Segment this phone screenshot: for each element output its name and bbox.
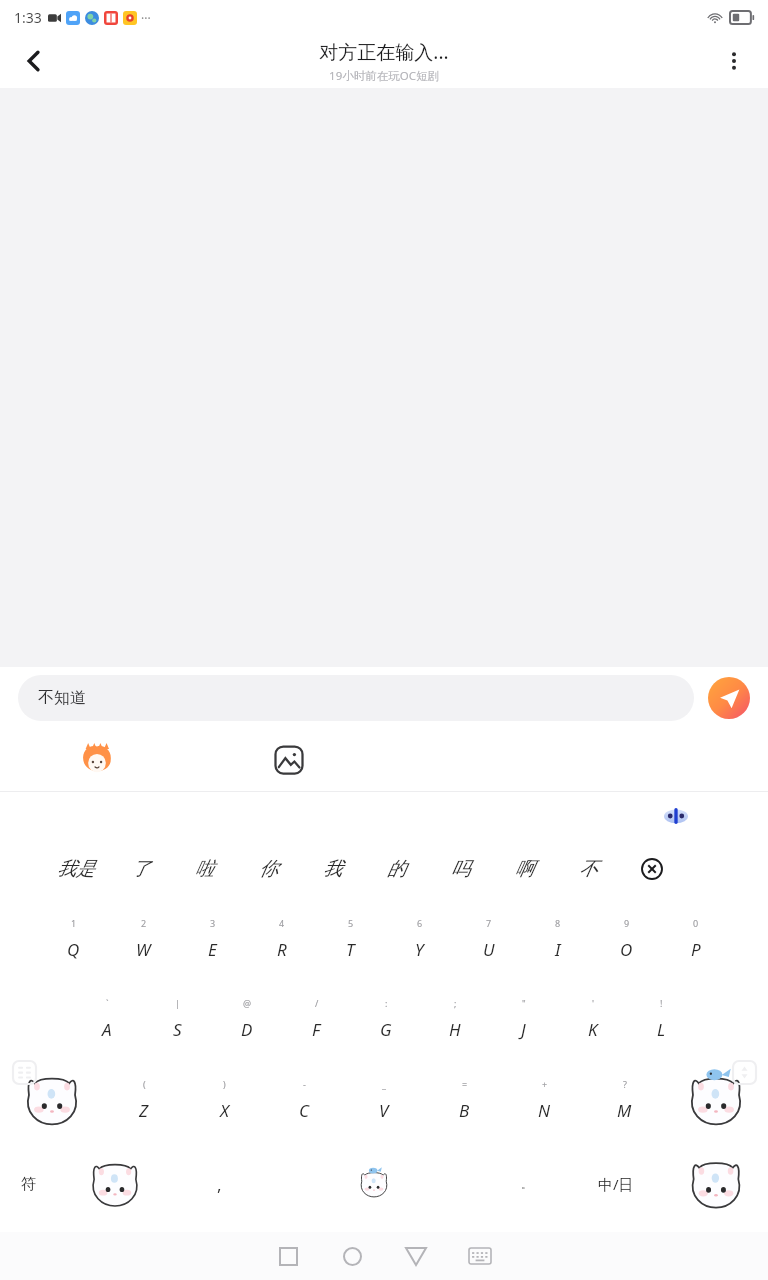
button[interactable]: 2	[108, 898, 178, 980]
button[interactable]: 啊	[492, 840, 556, 898]
staticText: A	[102, 1018, 112, 1041]
button[interactable]: '	[558, 980, 627, 1058]
staticText: 2	[141, 917, 147, 929]
button[interactable]: ;	[420, 980, 489, 1058]
staticText: '	[592, 997, 595, 1009]
button[interactable]: 不知道	[18, 675, 694, 721]
button[interactable]: Keyboard layout	[8, 1056, 40, 1088]
button[interactable]: 5	[316, 898, 385, 980]
button[interactable]: Home	[320, 1232, 384, 1280]
staticText: /	[315, 997, 319, 1009]
staticText: +	[542, 1078, 548, 1090]
button[interactable]: 吗	[428, 840, 492, 898]
button[interactable]: 的	[364, 840, 428, 898]
button[interactable]: Back	[384, 1232, 448, 1280]
staticText: 8	[555, 917, 561, 929]
button[interactable]: 中/日	[568, 1142, 664, 1226]
staticText: 中/日	[598, 1174, 634, 1194]
staticText: 啦	[195, 857, 214, 881]
button[interactable]: Voice input	[658, 798, 694, 834]
button[interactable]: 你	[236, 840, 300, 898]
staticText: U	[483, 938, 495, 961]
button[interactable]: !	[627, 980, 696, 1058]
button[interactable]: Stickers	[72, 735, 122, 785]
staticText: 5	[348, 917, 354, 929]
staticText: M	[617, 1099, 632, 1122]
button[interactable]: Close candidates	[620, 840, 684, 898]
button[interactable]: 3	[178, 898, 247, 980]
button[interactable]: `	[72, 980, 142, 1058]
staticText: W	[136, 938, 151, 961]
staticText: T	[346, 938, 355, 961]
button[interactable]: -	[264, 1058, 344, 1142]
staticText: 3	[210, 917, 216, 929]
staticText: Y	[415, 938, 424, 961]
button[interactable]: 4	[247, 898, 316, 980]
button[interactable]: Hide keyboard	[448, 1232, 512, 1280]
button[interactable]: 啦	[172, 840, 236, 898]
button[interactable]: /	[282, 980, 351, 1058]
staticText: ···	[141, 10, 151, 26]
button[interactable]: Shift	[0, 1058, 104, 1142]
button[interactable]: (	[104, 1058, 184, 1142]
button[interactable]: 我是	[44, 840, 108, 898]
button[interactable]: 6	[385, 898, 454, 980]
staticText: 9	[624, 917, 630, 929]
staticText: 6	[417, 917, 423, 929]
button[interactable]: 我	[300, 840, 364, 898]
button[interactable]: 符	[0, 1142, 56, 1226]
staticText: ?	[623, 1078, 627, 1090]
staticText: V	[379, 1099, 389, 1122]
staticText: 19小时前在玩OC短剧	[329, 68, 439, 84]
staticText: 。	[521, 1177, 532, 1191]
button[interactable]: 0	[661, 898, 730, 980]
button[interactable]: ?	[584, 1058, 664, 1142]
button[interactable]: _	[344, 1058, 424, 1142]
button[interactable]: :	[351, 980, 420, 1058]
staticText: "	[522, 997, 526, 1009]
button[interactable]: 1	[38, 898, 108, 980]
staticText: 对方正在输入...	[319, 39, 449, 65]
button[interactable]: Space	[264, 1142, 484, 1226]
staticText: Z	[139, 1099, 149, 1122]
button[interactable]: Send	[708, 677, 750, 719]
staticText: 不	[579, 857, 598, 881]
staticText: 不知道	[38, 688, 86, 708]
button[interactable]: "	[489, 980, 558, 1058]
staticText: C	[299, 1099, 309, 1122]
staticText: 你	[259, 857, 278, 881]
button[interactable]: )	[184, 1058, 264, 1142]
staticText: !	[660, 997, 663, 1009]
button[interactable]: |	[142, 980, 212, 1058]
button[interactable]: 8	[523, 898, 592, 980]
button[interactable]: =	[424, 1058, 504, 1142]
staticText: 的	[387, 857, 406, 881]
button[interactable]: Recents	[256, 1232, 320, 1280]
button[interactable]: Resize keyboard	[728, 1056, 760, 1088]
staticText: B	[459, 1099, 470, 1122]
staticText: 4	[279, 917, 285, 929]
button[interactable]: Enter	[664, 1142, 768, 1226]
button[interactable]: +	[504, 1058, 584, 1142]
staticText: 吗	[451, 857, 470, 881]
button[interactable]: 7	[454, 898, 523, 980]
button[interactable]: Back	[6, 34, 62, 88]
staticText: :	[385, 997, 388, 1009]
staticText: ,	[217, 1173, 222, 1196]
button[interactable]: @	[212, 980, 282, 1058]
button[interactable]: 不	[556, 840, 620, 898]
staticText: H	[449, 1018, 461, 1041]
button[interactable]: Symbols	[56, 1142, 174, 1226]
button[interactable]: Backspace	[664, 1058, 768, 1142]
button[interactable]: 9	[592, 898, 661, 980]
staticText: L	[657, 1018, 666, 1041]
button[interactable]: More options	[706, 34, 762, 88]
staticText: D	[241, 1018, 253, 1041]
button[interactable]: Pick image	[264, 735, 314, 785]
button[interactable]: 了	[108, 840, 172, 898]
staticText: X	[220, 1099, 229, 1122]
button[interactable]: ,	[174, 1142, 264, 1226]
staticText: O	[620, 938, 633, 961]
staticText: @	[243, 997, 252, 1009]
